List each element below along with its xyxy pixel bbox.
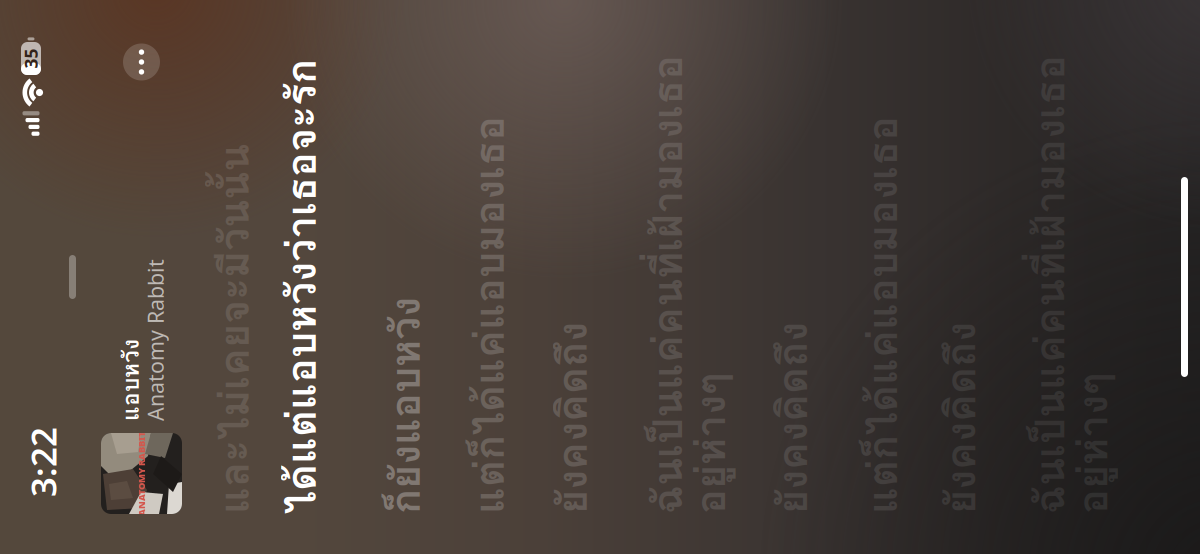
- staticText: แต่ก็ได้แค่แอบมองเธอ: [363, 134, 761, 198]
- staticText: ยังคงคิดถึง: [363, 217, 555, 281]
- staticText: ได้แต่แอบหวังว่าเธอจะรัก: [363, 0, 818, 10]
- staticText: ก็ยังแอบหวัง: [363, 50, 580, 114]
- staticText: แต่ก็ได้แค่แอบมองเธอ: [363, 527, 761, 554]
- staticText: ฉันเป็นแค่คนที่เฝ้ามองเธออยู่ห่างๆ: [363, 312, 822, 419]
- staticText: ยังคงคิดถึง: [363, 437, 555, 501]
